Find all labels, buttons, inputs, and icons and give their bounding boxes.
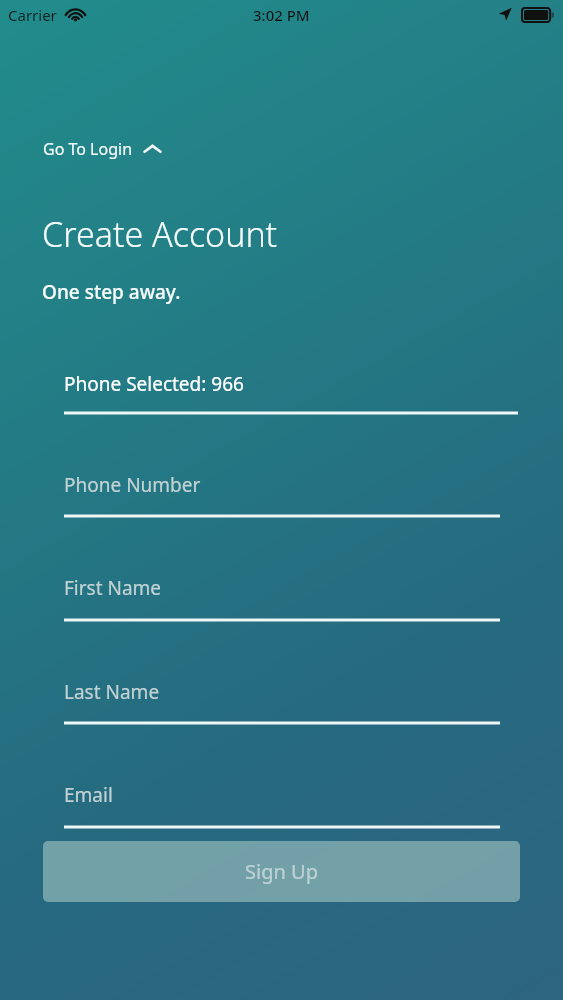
staticText: Sign Up (245, 858, 318, 885)
staticText: Create Account (42, 211, 278, 257)
staticText: Carrier (8, 5, 57, 25)
staticText: Go To Login (43, 138, 133, 160)
staticText: Last Name (64, 679, 160, 705)
staticText: Email (64, 782, 113, 808)
button[interactable]: Sign Up (43, 841, 520, 902)
button[interactable]: Phone Number (64, 460, 500, 520)
button[interactable]: Last Name (64, 667, 500, 727)
button[interactable]: Go To Login (42, 134, 164, 164)
staticText: Phone Number (64, 472, 201, 498)
staticText: 3:02 PM (253, 5, 310, 25)
button[interactable]: Email (64, 770, 500, 831)
button[interactable]: Phone Selected: 966 (64, 359, 518, 417)
staticText: Phone Selected: 966 (64, 371, 244, 397)
button[interactable]: First Name (64, 563, 500, 624)
staticText: First Name (64, 575, 162, 601)
staticText: One step away. (42, 279, 181, 305)
